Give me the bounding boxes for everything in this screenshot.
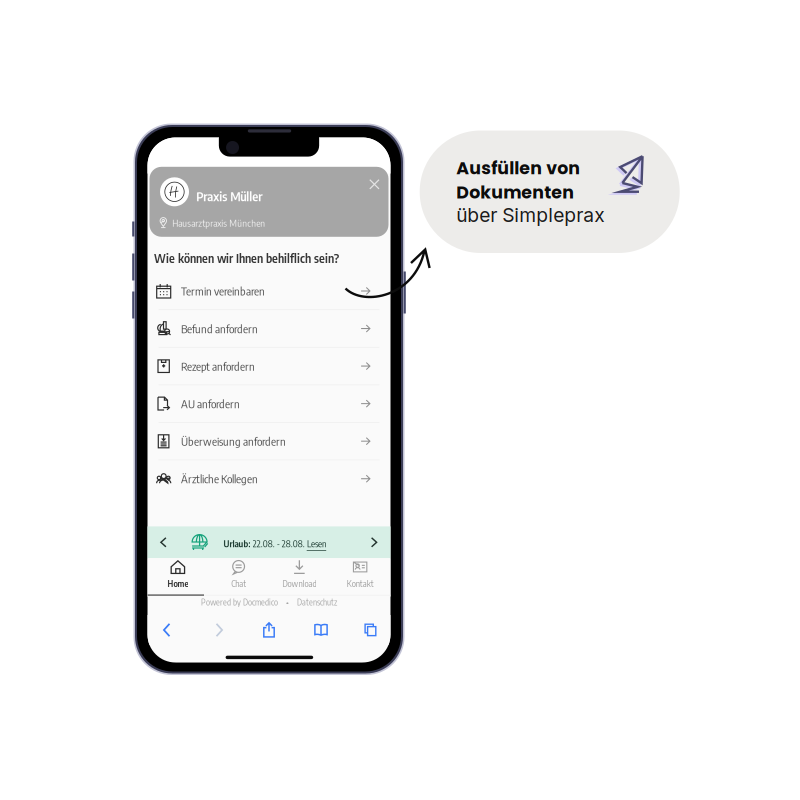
staticText: Datenschutz — [297, 597, 337, 607]
staticText: Wie können wir Ihnen behilflich sein? — [154, 250, 339, 266]
button[interactable]: Rezept anfordern — [147, 348, 390, 384]
staticText: Hausarztpraxis München — [172, 217, 265, 229]
button[interactable]: Download — [269, 558, 330, 590]
button[interactable]: Zurück — [145, 615, 189, 645]
button[interactable]: Lesezeichen — [299, 615, 343, 645]
button[interactable]: Schließen — [362, 172, 386, 196]
staticText: Dokumenten — [456, 180, 574, 205]
staticText: Ärztliche Kollegen — [181, 472, 258, 486]
staticText: Kontakt — [347, 578, 374, 589]
staticText: Rezept anfordern — [181, 359, 255, 373]
button[interactable]: Vorwärts — [197, 615, 241, 645]
button[interactable]: AU anfordern — [147, 385, 390, 422]
staticText: Home — [167, 578, 188, 589]
button[interactable]: Vorheriger Hinweis — [151, 526, 176, 558]
staticText: AU anfordern — [181, 396, 240, 411]
button[interactable]: Nächster Hinweis — [362, 526, 387, 558]
button[interactable]: Lesen — [307, 538, 326, 551]
staticText: Termin vereinbaren — [181, 284, 265, 298]
staticText: Befund anfordern — [181, 321, 258, 336]
staticText: über Simpleprax — [456, 203, 604, 226]
button[interactable]: Datenschutz — [297, 597, 337, 607]
staticText: Urlaub: — [223, 538, 250, 549]
staticText: Überweisung anfordern — [181, 434, 286, 448]
staticText: 22.08. - 28.08. — [253, 538, 305, 549]
button[interactable]: Chat — [208, 558, 269, 590]
button[interactable]: Teilen — [247, 615, 291, 645]
staticText: Chat — [231, 578, 246, 589]
staticText: Powered by Docmedico — [201, 597, 278, 607]
staticText: Praxis Müller — [196, 188, 262, 204]
button[interactable]: Tabs — [348, 615, 392, 645]
button[interactable]: Home — [147, 558, 208, 590]
button[interactable]: Termin vereinbaren — [147, 273, 390, 309]
button[interactable]: Überweisung anfordern — [147, 423, 390, 460]
staticText: Download — [282, 578, 316, 589]
staticText: • — [286, 597, 289, 607]
button[interactable]: Kontakt — [330, 558, 391, 590]
button[interactable]: Befund anfordern — [147, 310, 390, 347]
staticText: Ausfüllen von — [456, 156, 580, 180]
button[interactable]: Ärztliche Kollegen — [147, 460, 390, 497]
staticText: Lesen — [307, 538, 326, 549]
